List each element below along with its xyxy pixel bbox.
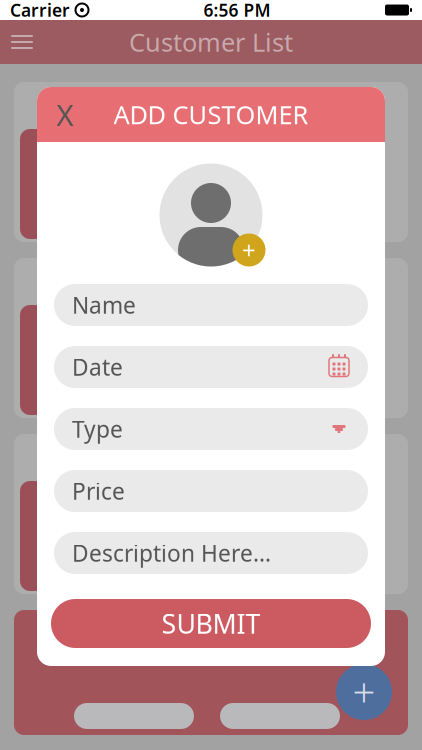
button[interactable]: Close bbox=[37, 87, 93, 142]
button[interactable]: Description Here... bbox=[54, 532, 368, 574]
staticText: Type bbox=[72, 414, 123, 444]
staticText: ADD CUSTOMER bbox=[113, 98, 308, 131]
button[interactable]: Date bbox=[54, 346, 368, 388]
staticText: Date bbox=[72, 352, 123, 382]
button[interactable]: Type bbox=[54, 408, 368, 450]
button[interactable]: Name bbox=[54, 284, 368, 326]
staticText: Name bbox=[72, 290, 136, 320]
staticText bbox=[70, 0, 75, 21]
staticText: + bbox=[352, 665, 375, 718]
staticText: + bbox=[242, 234, 256, 266]
button[interactable]: Add bbox=[336, 664, 392, 720]
staticText: X bbox=[56, 95, 73, 134]
staticText: Description Here... bbox=[72, 538, 271, 568]
staticText: SUBMIT bbox=[161, 606, 260, 641]
button[interactable]: SUBMIT bbox=[51, 599, 371, 648]
staticText: Customer List bbox=[129, 25, 293, 59]
button[interactable]: Add photo bbox=[158, 163, 264, 267]
button[interactable]: Price bbox=[54, 470, 368, 512]
staticText: 6:56 PM bbox=[203, 0, 270, 21]
staticText: Carrier bbox=[10, 0, 70, 21]
staticText: Price bbox=[72, 476, 125, 506]
button[interactable]: Menu bbox=[0, 20, 44, 64]
